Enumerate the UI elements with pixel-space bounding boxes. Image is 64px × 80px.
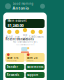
staticText: No transactions yet [12,40,37,43]
button[interactable]: Rewards [5,72,24,78]
staticText: Statements [27,65,43,69]
button[interactable]: Earn 2x [25,53,45,62]
staticText: More [37,35,44,38]
staticText: Recent transactions [5,37,33,41]
staticText: Antonio [13,5,29,11]
staticText: Good morning [13,2,34,5]
staticText: on groceries [7,60,17,62]
staticText: $1,240.00 [7,23,23,28]
staticText: Top up [22,33,27,40]
button[interactable]: Top up [21,28,29,40]
button[interactable]: Statements [26,64,45,70]
button[interactable]: Send [5,30,13,38]
staticText: Cards [29,35,36,38]
staticText: Save 5% [7,56,18,60]
staticText: Earn 2x [27,56,37,60]
staticText: Transfer [7,65,18,69]
button[interactable]: Transfer [5,64,24,70]
button[interactable]: Main account [5,19,45,28]
button[interactable]: Notifications [40,4,45,9]
staticText: on travel [27,60,33,62]
button[interactable]: More [37,30,45,38]
button[interactable]: Cards [29,30,37,38]
button[interactable]: Account [5,3,11,9]
staticText: Rewards [7,73,19,77]
staticText: Main account [7,19,26,22]
staticText: Send [6,35,13,38]
staticText: Pay [15,35,19,38]
staticText: Your activity will appear here [15,44,34,46]
staticText: Support [27,73,38,77]
button[interactable]: Pay [13,30,21,38]
button[interactable]: Support [26,72,45,78]
button[interactable]: Save 5% [5,53,25,62]
